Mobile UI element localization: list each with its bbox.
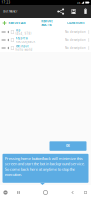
staticText: SELECTED — [41, 23, 52, 26]
button[interactable]: Recent apps — [83, 190, 88, 195]
staticText: Text input — [15, 44, 28, 48]
staticText: KEYCODE_BACK — [15, 40, 35, 43]
staticText: REMOVE — [41, 19, 52, 23]
staticText: No description — [65, 30, 86, 34]
button[interactable]: Home — [42, 189, 48, 195]
staticText: Bot Maker — [3, 10, 17, 13]
button[interactable]: Text input — [0, 44, 91, 52]
staticText: Tap — [15, 28, 20, 32]
button[interactable]: Key press — [0, 36, 91, 44]
button[interactable]: CLONE ROWS — [67, 18, 91, 28]
staticText: hello world — [15, 48, 32, 51]
button[interactable]: OK — [49, 141, 86, 151]
button[interactable]: Share — [56, 5, 65, 18]
staticText: Key press — [15, 36, 27, 40]
button[interactable]: Back — [70, 190, 75, 195]
staticText: OK — [66, 144, 70, 148]
staticText: CLONE ROWS — [67, 21, 84, 25]
staticText: No description — [65, 46, 86, 50]
staticText: (454, 978) — [15, 32, 31, 35]
button[interactable]: Tap — [0, 28, 91, 36]
staticText: LTE — [77, 1, 80, 4]
button[interactable]: Save — [69, 5, 77, 18]
button[interactable]: Do not disturb — [3, 190, 8, 195]
button[interactable]: REMOVE LAST — [0, 18, 26, 28]
staticText: REMOVE LAST — [8, 21, 26, 25]
staticText: No description — [65, 38, 86, 42]
staticText: Pressing home button/back will minimize … — [5, 156, 85, 177]
button[interactable]: REMOVE — [41, 18, 52, 28]
staticText: 17:23 — [1, 1, 10, 4]
button[interactable]: Delete — [81, 5, 89, 18]
button[interactable]: Pause — [16, 190, 21, 195]
